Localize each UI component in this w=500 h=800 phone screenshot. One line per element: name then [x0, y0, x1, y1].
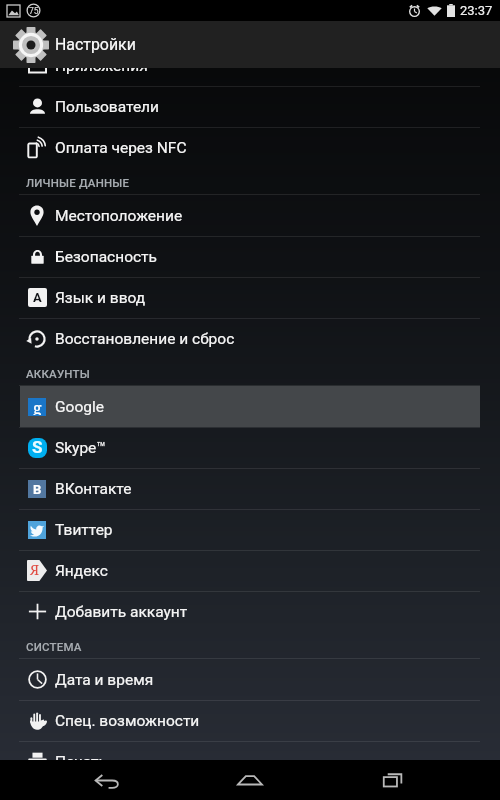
staticText: S: [32, 437, 43, 457]
staticText: 75: [29, 6, 39, 16]
button[interactable]: Добавить аккаунт: [0, 591, 500, 632]
staticText: ВКонтакте: [55, 480, 132, 498]
staticText: Восстановление и сброс: [55, 330, 235, 348]
button[interactable]: Я: [0, 550, 500, 591]
button[interactable]: В: [0, 468, 500, 509]
staticText: Google: [55, 398, 104, 416]
button[interactable]: A: [0, 277, 500, 318]
staticText: ЛИЧНЫЕ ДАННЫЕ: [26, 176, 130, 189]
staticText: Skype™: [55, 439, 107, 457]
staticText: g: [33, 397, 42, 415]
button[interactable]: Твиттер: [0, 509, 500, 550]
button[interactable]: Печать: [0, 741, 500, 760]
staticText: Язык и ввод: [55, 289, 146, 307]
staticText: A: [33, 290, 42, 305]
button[interactable]: Безопасность: [0, 236, 500, 277]
staticText: Я: [30, 560, 40, 579]
button[interactable]: Settings: [0, 21, 55, 68]
staticText: Спец. возможности: [55, 712, 200, 730]
staticText: АККАУНТЫ: [26, 367, 90, 380]
staticText: Дата и время: [55, 671, 154, 689]
staticText: Безопасность: [55, 248, 157, 266]
staticText: Настройки: [55, 35, 136, 54]
button[interactable]: g: [0, 386, 500, 427]
button[interactable]: Оплата через NFC: [0, 127, 500, 168]
button[interactable]: Дата и время: [0, 659, 500, 700]
staticText: Оплата через NFC: [55, 139, 187, 157]
button[interactable]: Back: [71, 760, 143, 800]
button[interactable]: Recent apps: [357, 760, 429, 800]
button[interactable]: Пользователи: [0, 86, 500, 127]
staticText: Пользователи: [55, 98, 160, 116]
button[interactable]: Спец. возможности: [0, 700, 500, 741]
button[interactable]: Восстановление и сброс: [0, 318, 500, 359]
staticText: Яндекс: [55, 562, 108, 580]
button[interactable]: Местоположение: [0, 195, 500, 236]
button[interactable]: Home: [214, 760, 286, 800]
staticText: Твиттер: [55, 521, 113, 539]
staticText: Печать: [55, 753, 107, 760]
button[interactable]: Приложения: [0, 68, 500, 86]
staticText: В: [33, 482, 42, 497]
staticText: Местоположение: [55, 207, 183, 225]
staticText: Приложения: [55, 68, 148, 75]
staticText: Добавить аккаунт: [55, 603, 188, 621]
staticText: 23:37: [460, 3, 493, 18]
button[interactable]: S: [0, 427, 500, 468]
staticText: СИСТЕМА: [26, 640, 82, 653]
